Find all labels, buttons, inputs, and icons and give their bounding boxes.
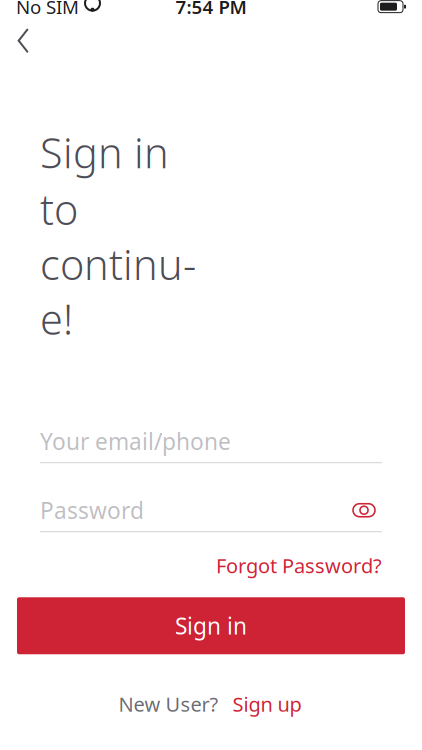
staticText: Your email/phone [40,426,231,456]
staticText: No SIM [16,0,79,19]
button[interactable]: Show password [346,496,382,524]
staticText: Sign in [175,611,247,641]
staticText: 7:54 PM [175,0,246,19]
button[interactable]: Sign in [0,593,422,659]
staticText: Forgot Password? [216,552,382,579]
button[interactable]: Sign up [230,687,303,721]
staticText: to continue! [40,182,196,346]
staticText: New User? [118,691,218,717]
button[interactable]: Forgot Password? [216,546,382,585]
button[interactable]: Back [0,19,44,63]
staticText: Sign up [232,691,301,717]
staticText: Sign in [40,125,169,180]
staticText: Password [40,495,144,525]
